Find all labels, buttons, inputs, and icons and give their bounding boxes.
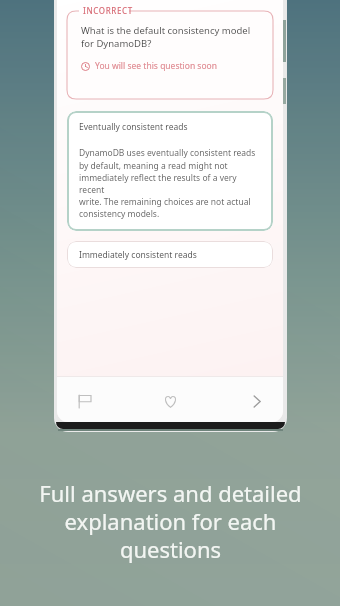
button[interactable]: Next question — [243, 388, 269, 414]
staticText: What is the default consistency model fo… — [81, 24, 251, 50]
button[interactable]: INCORRECT — [67, 4, 273, 99]
button[interactable]: Eventually consistent reads — [67, 111, 273, 231]
staticText: INCORRECT — [83, 5, 133, 16]
button[interactable]: Flag question — [71, 388, 97, 414]
staticText: Immediately consistent reads — [79, 249, 197, 261]
staticText: You will see this question soon — [95, 60, 217, 72]
staticText: DynamoDB uses eventually consistent read… — [79, 147, 261, 219]
button[interactable]: Immediately consistent reads — [67, 241, 273, 268]
staticText: Full answers and detailed explanation fo… — [39, 478, 302, 564]
staticText: Eventually consistent reads — [79, 121, 188, 133]
button[interactable]: Favorite — [157, 388, 183, 414]
